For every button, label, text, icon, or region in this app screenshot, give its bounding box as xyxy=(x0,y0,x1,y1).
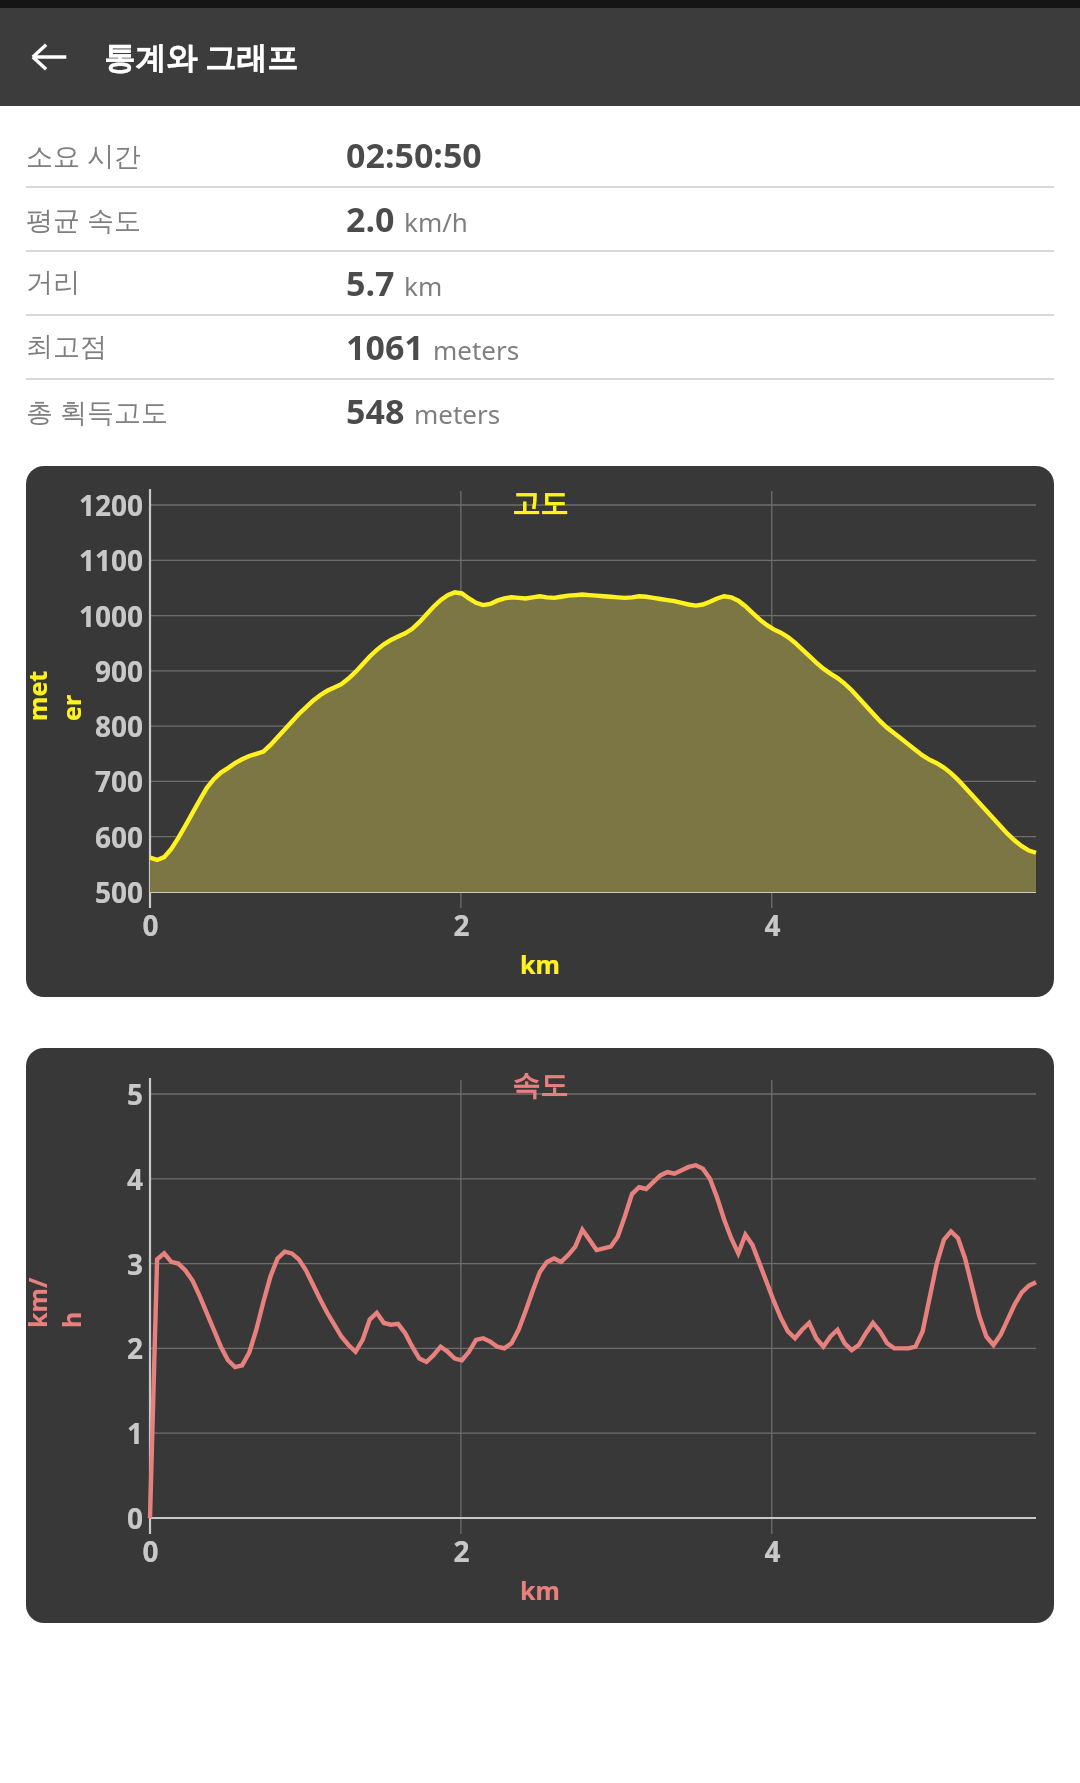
staticText: 최고점 xyxy=(26,330,107,364)
staticText: 600 xyxy=(95,818,144,856)
staticText: 800 xyxy=(95,707,144,745)
staticText: 02:50:50 xyxy=(346,132,482,178)
button[interactable]: 최고점 xyxy=(0,316,1080,378)
staticText: km xyxy=(520,1573,560,1607)
staticText: 700 xyxy=(95,762,144,800)
staticText: 548 xyxy=(346,388,405,434)
staticText: 거리 xyxy=(26,266,80,300)
staticText: 2 xyxy=(127,1329,144,1367)
staticText: 4 xyxy=(764,906,781,944)
staticText: km/h xyxy=(404,204,468,239)
staticText: 2 xyxy=(453,906,470,944)
staticText: 5.7 xyxy=(346,260,395,306)
button[interactable]: 거리 xyxy=(0,252,1080,314)
staticText: km/h xyxy=(26,1272,88,1328)
staticText: 4 xyxy=(127,1160,144,1198)
staticText: 1061 xyxy=(346,324,424,370)
staticText: 4 xyxy=(764,1532,781,1570)
staticText: km xyxy=(520,947,560,981)
staticText: 3 xyxy=(127,1245,144,1283)
staticText: meters xyxy=(414,396,501,431)
staticText: 500 xyxy=(95,873,144,911)
staticText: 총 획득고도 xyxy=(26,393,169,430)
staticText: 900 xyxy=(95,652,144,690)
staticText: meter xyxy=(26,665,88,721)
button[interactable]: 고도 xyxy=(26,466,1054,997)
staticText: 통계와 그래프 xyxy=(104,36,299,78)
staticText: 0 xyxy=(142,906,159,944)
staticText: 1 xyxy=(127,1414,144,1452)
button[interactable]: 평균 속도 xyxy=(0,188,1080,250)
button[interactable]: 총 획득고도 xyxy=(0,380,1080,442)
staticText: 소요 시간 xyxy=(26,137,142,174)
staticText: 1200 xyxy=(79,486,144,524)
staticText: 2 xyxy=(453,1532,470,1570)
staticText: 1000 xyxy=(79,597,144,635)
staticText: 5 xyxy=(127,1075,144,1113)
button[interactable]: Back xyxy=(16,24,82,90)
staticText: meters xyxy=(433,332,520,367)
staticText: km xyxy=(404,268,443,303)
staticText: 평균 속도 xyxy=(26,201,142,238)
button[interactable]: 속도 xyxy=(26,1048,1054,1623)
button[interactable]: 소요 시간 xyxy=(0,124,1080,186)
staticText: 2.0 xyxy=(346,196,395,242)
staticText: 고도 xyxy=(512,486,568,521)
staticText: 0 xyxy=(127,1499,144,1537)
staticText: 0 xyxy=(142,1532,159,1570)
staticText: 속도 xyxy=(512,1068,568,1103)
staticText: 1100 xyxy=(79,541,144,579)
